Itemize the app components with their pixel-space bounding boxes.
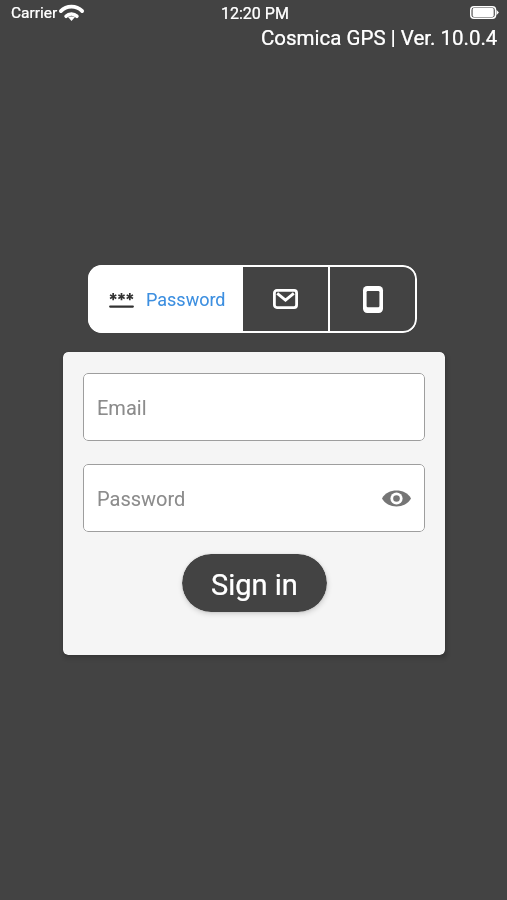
- staticText: Carrier: [11, 4, 58, 22]
- button[interactable]: Sign in with phone number: [330, 265, 415, 333]
- button[interactable]: Email: [83, 373, 425, 441]
- button[interactable]: Sign in with email: [243, 265, 328, 333]
- staticText: Sign in: [211, 568, 298, 602]
- staticText: Email: [97, 396, 147, 419]
- button[interactable]: Sign in: [182, 554, 327, 612]
- button[interactable]: Password: [88, 265, 241, 333]
- button[interactable]: Password: [83, 464, 425, 532]
- staticText: Password: [97, 487, 186, 510]
- staticText: Password: [146, 289, 226, 310]
- staticText: 12:20 PM: [221, 4, 289, 23]
- staticText: Cosmica GPS | Ver. 10.0.4: [261, 26, 498, 50]
- other: Show password: [382, 489, 411, 508]
